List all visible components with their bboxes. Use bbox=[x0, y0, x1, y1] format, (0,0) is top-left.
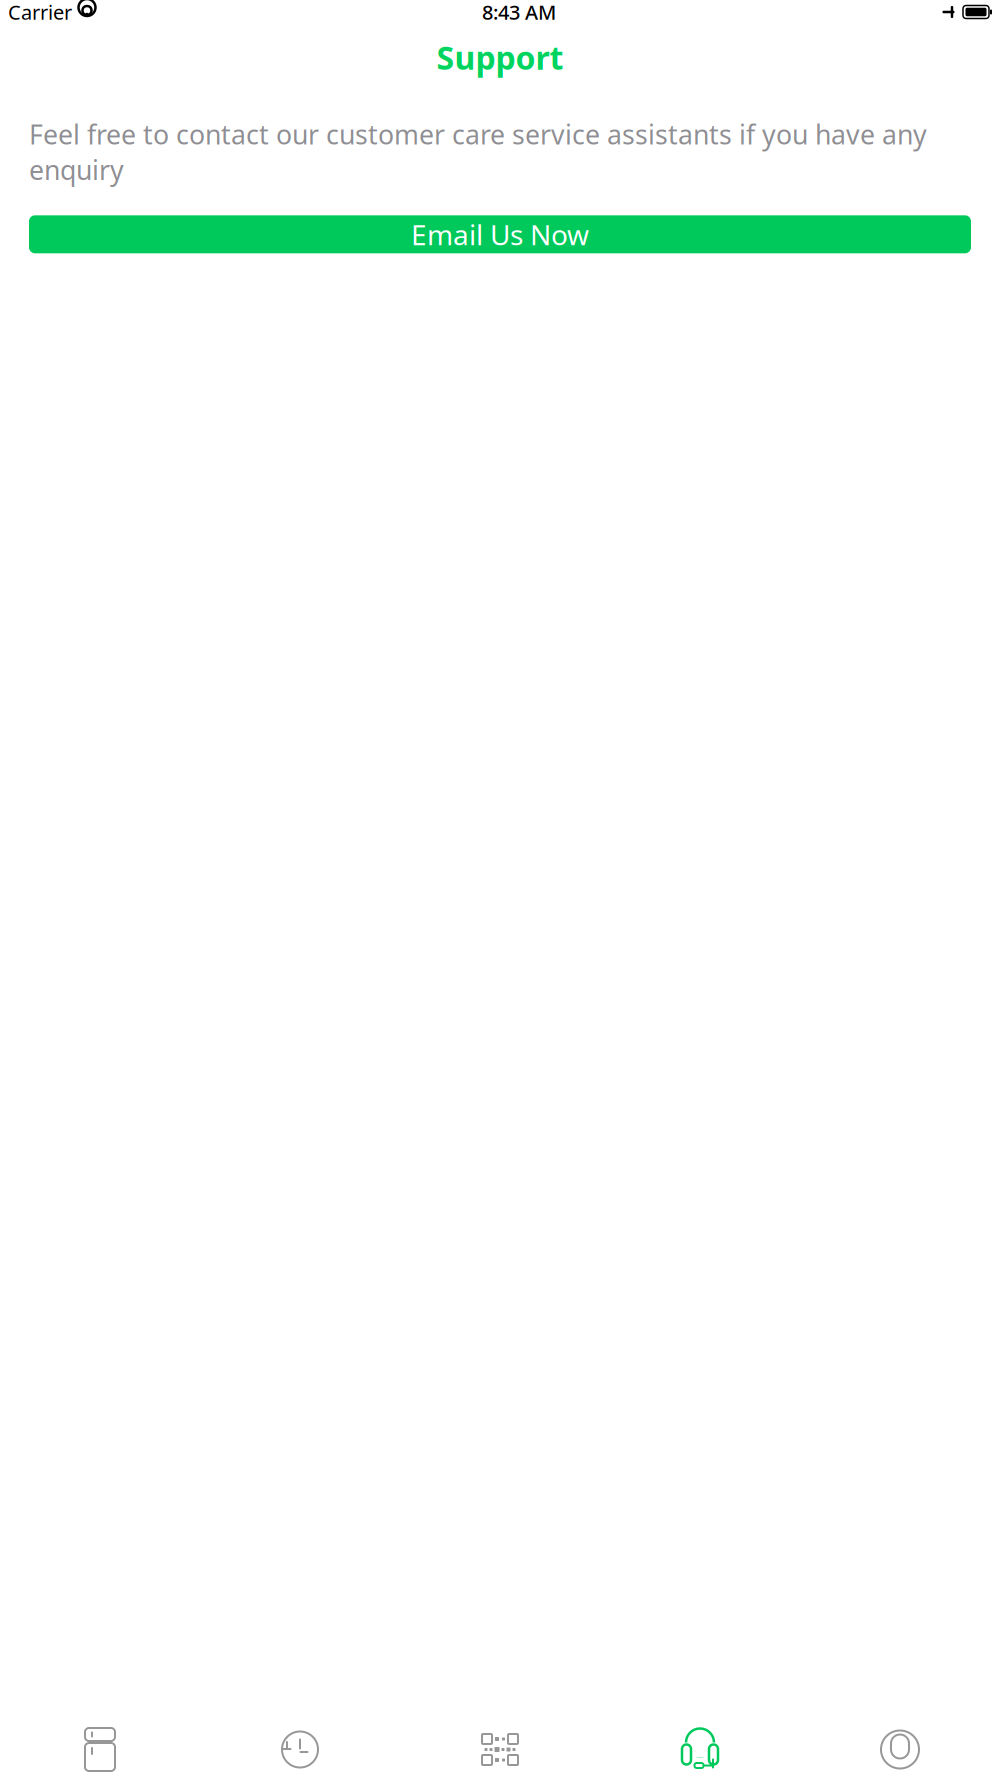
staticText: 8:43 AM bbox=[482, 0, 556, 25]
button[interactable]: Fridge bbox=[0, 1725, 200, 1774]
staticText: Carrier bbox=[8, 0, 72, 25]
button[interactable]: Support bbox=[600, 1725, 800, 1774]
button[interactable]: History bbox=[200, 1725, 400, 1774]
button[interactable]: Scan QR code bbox=[400, 1725, 600, 1774]
button[interactable]: Email Us Now bbox=[29, 215, 971, 253]
button[interactable]: Profile bbox=[800, 1725, 1000, 1774]
staticText: Feel free to contact our customer care s… bbox=[29, 116, 927, 187]
staticText: Email Us Now bbox=[411, 216, 589, 253]
staticText: Support bbox=[436, 36, 563, 78]
